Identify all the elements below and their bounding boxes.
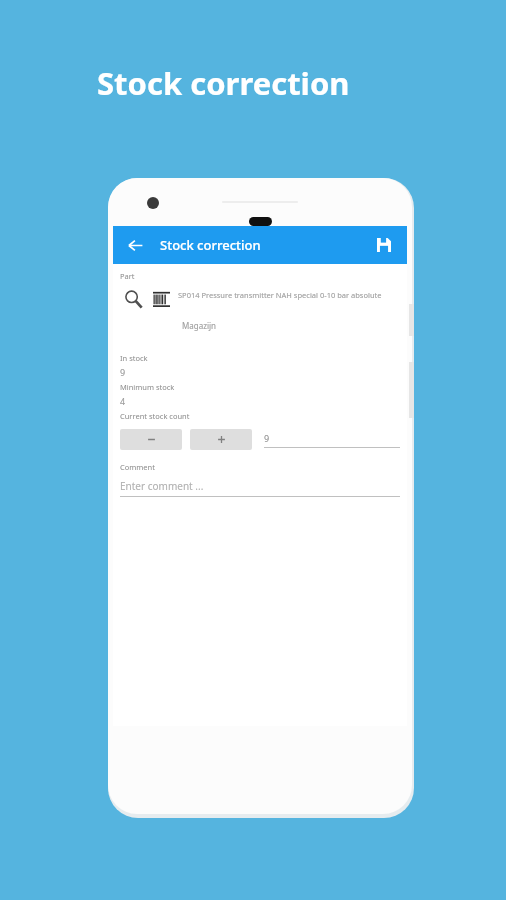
button[interactable]: Back: [122, 232, 148, 258]
button[interactable]: Enter comment ...: [120, 479, 400, 497]
staticText: SP014 Pressure transmitter NAH special 0…: [178, 290, 382, 300]
staticText: Comment: [120, 462, 155, 472]
staticText: 9: [264, 432, 270, 444]
staticText: 4: [120, 395, 126, 407]
staticText: In stock: [120, 353, 148, 363]
button[interactable]: Decrease: [120, 429, 182, 450]
button[interactable]: Scan barcode: [148, 286, 175, 313]
staticText: 9: [120, 366, 126, 378]
button[interactable]: Search part: [120, 286, 147, 313]
staticText: Stock correction: [160, 236, 261, 254]
button[interactable]: Save: [371, 232, 397, 258]
staticText: Current stock count: [120, 411, 190, 421]
button[interactable]: Increase: [190, 429, 252, 450]
staticText: Minimum stock: [120, 382, 175, 392]
staticText: Enter comment ...: [120, 479, 204, 493]
staticText: Part: [120, 271, 135, 281]
staticText: Stock correction: [97, 62, 350, 104]
staticText: Magazijn: [182, 320, 216, 331]
